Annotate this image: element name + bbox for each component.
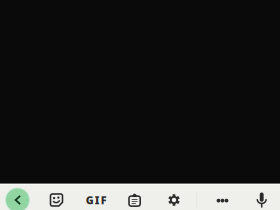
button[interactable]: Stickers: [41, 187, 71, 210]
button[interactable]: Settings: [159, 187, 189, 210]
button[interactable]: Back: [4, 187, 30, 210]
staticText: GIF: [86, 193, 107, 207]
button[interactable]: Clipboard: [120, 187, 150, 210]
button[interactable]: Dictate: [247, 187, 277, 210]
button[interactable]: More: [207, 187, 237, 210]
button[interactable]: GIF: [81, 187, 111, 210]
